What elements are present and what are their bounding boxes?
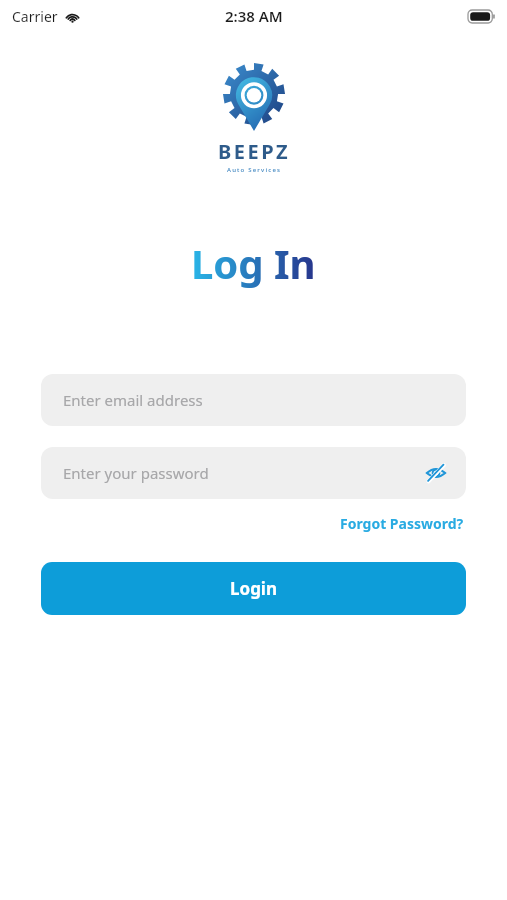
button[interactable]: Login (41, 562, 466, 615)
button[interactable]: Forgot Password? (338, 511, 466, 536)
staticText: 2:38 AM (225, 6, 283, 26)
staticText: BEEPZ (218, 138, 290, 165)
button[interactable]: Enter your password (41, 447, 466, 499)
staticText: Carrier (12, 7, 58, 26)
button[interactable]: Enter email address (41, 374, 466, 426)
staticText: Login (230, 577, 278, 600)
button[interactable]: Show password (420, 457, 452, 489)
staticText: Enter email address (63, 390, 203, 410)
staticText: Forgot Password? (340, 514, 464, 533)
staticText: Log In (191, 236, 316, 290)
staticText: Auto Services (227, 166, 282, 174)
staticText: Enter your password (63, 463, 420, 483)
